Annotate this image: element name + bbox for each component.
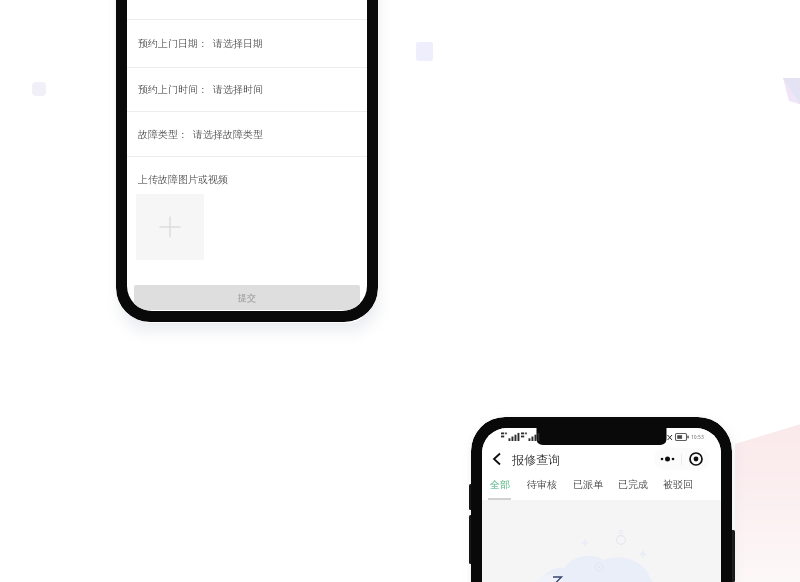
staticText: 报修查询 bbox=[512, 452, 560, 467]
button[interactable]: 被驳回 bbox=[662, 473, 694, 498]
staticText: 预约上门日期： bbox=[138, 37, 208, 50]
button[interactable]: 关闭 bbox=[682, 448, 710, 470]
button[interactable]: 待审核 bbox=[526, 473, 558, 498]
button[interactable]: 更多 bbox=[654, 448, 681, 470]
staticText: 故障类型： bbox=[138, 128, 188, 141]
button[interactable]: 全部 bbox=[487, 473, 512, 500]
button[interactable]: 预约上门日期： bbox=[127, 20, 367, 67]
staticText: 被驳回 bbox=[663, 478, 693, 491]
button[interactable]: 已完成 bbox=[617, 473, 649, 498]
button[interactable]: 故障类型： bbox=[127, 112, 367, 156]
button[interactable]: 返回 bbox=[488, 450, 506, 468]
staticText: 上传故障图片或视频 bbox=[138, 173, 228, 186]
staticText: 已完成 bbox=[618, 478, 648, 491]
staticText: 预约上门时间： bbox=[138, 83, 208, 96]
staticText: 待审核 bbox=[527, 478, 557, 491]
staticText: 请选择日期 bbox=[213, 37, 263, 50]
staticText: 请选择时间 bbox=[213, 83, 263, 96]
staticText: 10:53 bbox=[691, 434, 704, 441]
staticText: 全部 bbox=[490, 478, 510, 491]
button[interactable]: 预约上门时间： bbox=[127, 68, 367, 111]
staticText: 提交 bbox=[238, 292, 256, 303]
button[interactable]: 提交 bbox=[134, 285, 360, 310]
button[interactable]: 已派单 bbox=[572, 473, 604, 498]
staticText: 请选择故障类型 bbox=[193, 128, 263, 141]
staticText: 已派单 bbox=[573, 478, 603, 491]
